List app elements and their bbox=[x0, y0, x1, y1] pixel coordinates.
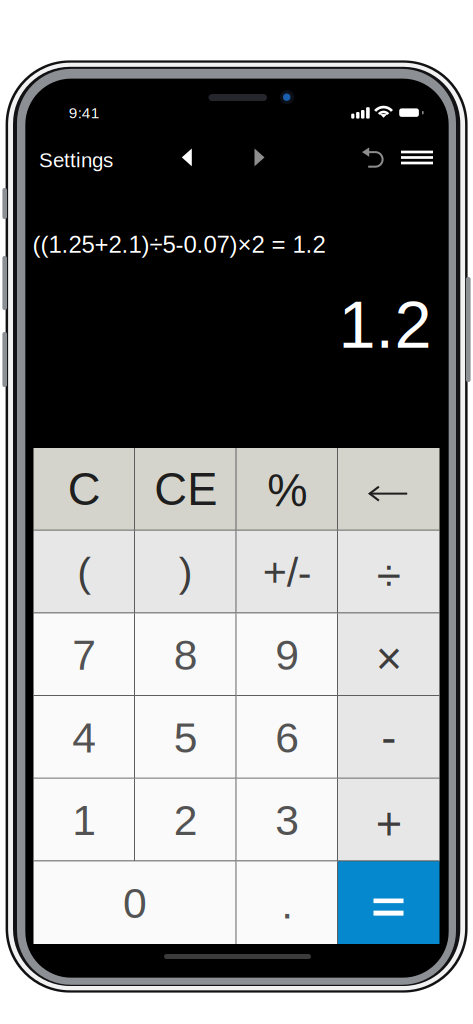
staticText: 6 bbox=[275, 714, 299, 761]
staticText: - bbox=[381, 713, 396, 763]
button[interactable]: 0 bbox=[33, 861, 236, 944]
button[interactable]: +/- bbox=[236, 531, 338, 613]
staticText: + bbox=[376, 798, 402, 849]
button[interactable]: 1 bbox=[33, 779, 135, 861]
button[interactable]: ) bbox=[135, 531, 236, 613]
button[interactable]: 6 bbox=[236, 696, 338, 779]
button[interactable]: ( bbox=[33, 531, 135, 613]
button[interactable]: × bbox=[338, 613, 439, 696]
button[interactable]: 3 bbox=[236, 779, 338, 861]
button[interactable]: Undo bbox=[353, 142, 392, 177]
button[interactable]: 9 bbox=[236, 613, 338, 696]
staticText: ÷ bbox=[377, 551, 401, 600]
button[interactable]: Next bbox=[242, 136, 276, 178]
button[interactable]: Previous bbox=[170, 136, 204, 178]
staticText: 3 bbox=[275, 796, 299, 844]
button[interactable]: % bbox=[236, 448, 338, 531]
button[interactable]: ÷ bbox=[338, 531, 439, 613]
staticText: % bbox=[267, 465, 307, 516]
staticText: 7 bbox=[72, 631, 96, 679]
staticText: ( bbox=[77, 549, 91, 596]
button[interactable]: Menu bbox=[392, 142, 442, 173]
button[interactable]: 8 bbox=[135, 613, 236, 696]
staticText: 9 bbox=[275, 631, 299, 679]
staticText: ((1.25+2.1)÷5-0.07)×2 = 1.2 bbox=[32, 231, 325, 258]
staticText: 8 bbox=[174, 631, 198, 679]
staticText: 1.2 bbox=[338, 287, 431, 362]
staticText: 5 bbox=[174, 714, 198, 761]
button[interactable]: Equals bbox=[338, 861, 439, 944]
button[interactable]: + bbox=[338, 779, 439, 861]
staticText: . bbox=[281, 880, 293, 927]
staticText: Settings bbox=[39, 149, 113, 172]
staticText: 0 bbox=[123, 879, 147, 927]
staticText: 4 bbox=[72, 714, 96, 761]
button[interactable]: 7 bbox=[33, 613, 135, 696]
button[interactable]: - bbox=[338, 696, 439, 779]
button[interactable]: 2 bbox=[135, 779, 236, 861]
button[interactable]: 5 bbox=[135, 696, 236, 779]
staticText: CE bbox=[154, 464, 217, 514]
staticText: 1 bbox=[72, 796, 96, 844]
button[interactable]: 4 bbox=[33, 696, 135, 779]
button[interactable]: CE bbox=[135, 448, 236, 531]
staticText: ) bbox=[179, 549, 193, 596]
button[interactable]: . bbox=[236, 861, 338, 944]
button[interactable]: Backspace bbox=[338, 448, 439, 531]
staticText: × bbox=[376, 633, 402, 684]
button[interactable]: C bbox=[33, 448, 135, 531]
staticText: 9:41 bbox=[69, 104, 100, 121]
staticText: 2 bbox=[174, 796, 198, 844]
staticText: +/- bbox=[263, 549, 312, 595]
button[interactable]: Settings bbox=[30, 140, 122, 181]
staticText: C bbox=[68, 464, 101, 514]
